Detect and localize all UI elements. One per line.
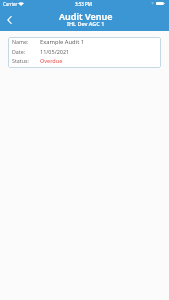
staticText: 11/05/2021	[40, 48, 70, 55]
staticText: Audit Venue	[59, 10, 113, 22]
staticText: Status:	[12, 57, 29, 64]
staticText: Overdue	[40, 57, 63, 64]
staticText: 3:53 PM	[75, 1, 92, 7]
staticText: Date:	[12, 48, 26, 55]
staticText: Example Audit 1	[40, 38, 85, 45]
staticText: IHL Dev AGC 1	[67, 20, 105, 27]
button[interactable]: Back	[0, 11, 18, 31]
staticText: Carrier	[3, 1, 18, 7]
staticText: Name:	[12, 38, 29, 45]
